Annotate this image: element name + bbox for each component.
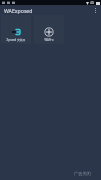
staticText: 4G xyxy=(90,1,95,5)
button[interactable]: WAPro xyxy=(34,15,64,44)
staticText: WAPro xyxy=(34,38,64,42)
button[interactable]: Xposed 安装器 xyxy=(1,15,31,44)
staticText: Xposed 安装器 xyxy=(1,38,31,42)
staticText: 广告关闭 xyxy=(74,171,91,176)
staticText: WAExposed xyxy=(4,7,33,14)
button[interactable]: More options xyxy=(90,5,101,15)
